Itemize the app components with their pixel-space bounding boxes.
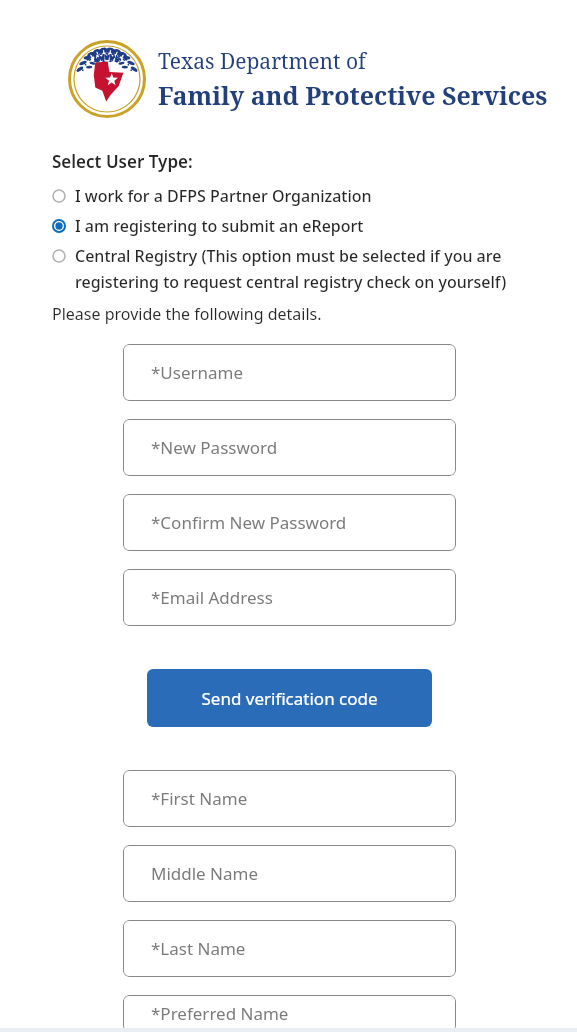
staticText: DFPS bbox=[93, 50, 122, 65]
staticText: I work for a DFPS Partner Organization bbox=[75, 185, 372, 207]
staticText: Middle Name bbox=[151, 862, 259, 885]
staticText: Send verification code bbox=[201, 687, 378, 710]
button[interactable]: I work for a DFPS Partner Organization bbox=[52, 185, 525, 207]
button[interactable]: Send verification code bbox=[147, 669, 432, 727]
button[interactable]: *Confirm New Password bbox=[123, 494, 456, 551]
button[interactable]: I am registering to submit an eReport bbox=[52, 215, 525, 237]
staticText: Family and Protective Services bbox=[158, 78, 548, 112]
staticText: Select User Type: bbox=[52, 150, 193, 173]
staticText: *First Name bbox=[151, 787, 248, 810]
staticText: I am registering to submit an eReport bbox=[75, 215, 364, 237]
staticText: *Confirm New Password bbox=[151, 511, 347, 534]
button[interactable]: *Email Address bbox=[123, 569, 456, 626]
button[interactable]: *Preferred Name bbox=[123, 995, 456, 1032]
staticText: *Email Address bbox=[151, 586, 273, 609]
staticText: Please provide the following details. bbox=[52, 303, 322, 325]
staticText: *Preferred Name bbox=[151, 1002, 289, 1025]
staticText: *Last Name bbox=[151, 937, 246, 960]
button[interactable]: Central Registry (This option must be se… bbox=[52, 245, 525, 293]
staticText: Texas Department of bbox=[158, 47, 366, 76]
button[interactable]: *New Password bbox=[123, 419, 456, 476]
button[interactable]: Middle Name bbox=[123, 845, 456, 902]
button[interactable]: *First Name bbox=[123, 770, 456, 827]
button[interactable]: *Last Name bbox=[123, 920, 456, 977]
button[interactable]: *Username bbox=[123, 344, 456, 401]
staticText: *New Password bbox=[151, 436, 278, 459]
staticText: Central Registry (This option must be se… bbox=[75, 245, 525, 293]
other: DFPS seal bbox=[68, 40, 146, 118]
staticText: *Username bbox=[151, 361, 244, 384]
